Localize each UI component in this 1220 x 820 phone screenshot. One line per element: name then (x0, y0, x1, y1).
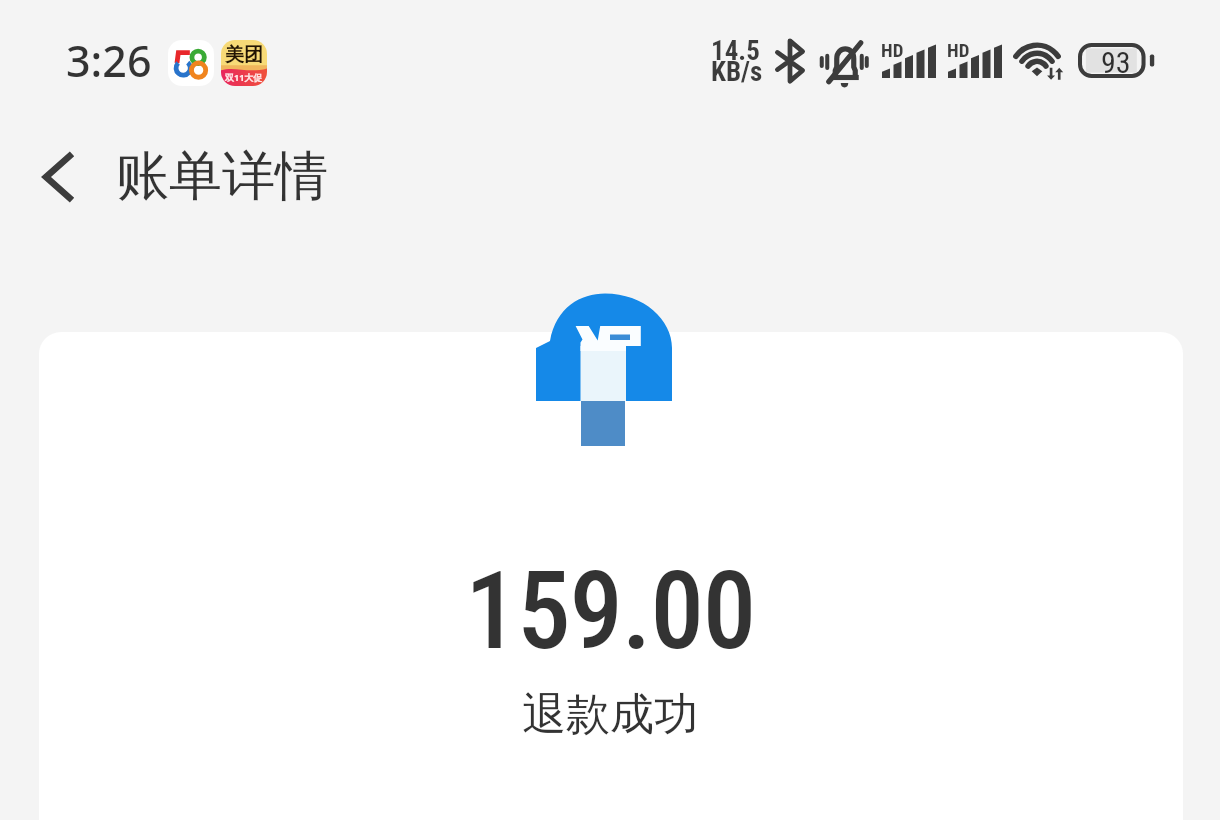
staticText: HD (947, 39, 970, 61)
staticText: 14.5 (711, 35, 760, 67)
staticText: 3:26 (66, 31, 152, 90)
staticText: 退款成功 (0, 687, 1220, 742)
staticText: 159.00 (0, 549, 1220, 674)
staticText: 美团 (225, 43, 263, 67)
staticText: 双11大促 (225, 71, 263, 83)
staticText: HD (881, 39, 904, 61)
staticText: KB/s (711, 56, 763, 88)
button[interactable]: Back (17, 135, 101, 219)
other: Refund mailbox illustration (536, 293, 672, 446)
staticText: 93 (1101, 45, 1131, 80)
staticText: 账单详情 (116, 143, 328, 210)
